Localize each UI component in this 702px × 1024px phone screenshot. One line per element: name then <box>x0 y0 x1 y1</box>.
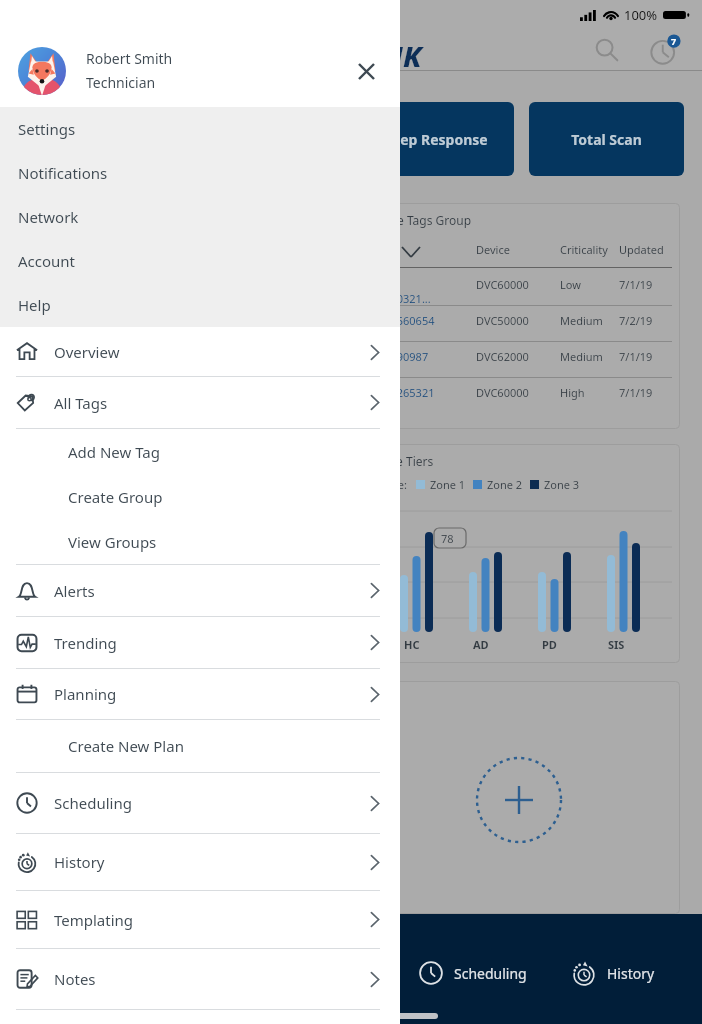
staticText: Criticality Response Tiers <box>293 453 434 469</box>
button[interactable]: Overview <box>0 328 400 376</box>
staticText: Zone 1 <box>430 477 466 492</box>
button[interactable]: Network <box>0 195 400 239</box>
button[interactable]: Trending <box>0 617 400 668</box>
staticText: TAG04560654 <box>364 313 435 328</box>
staticText: TAG01265321 <box>364 385 435 400</box>
button[interactable]: Scheduling <box>406 948 539 998</box>
staticText: Low <box>560 277 581 292</box>
button[interactable]: Scheduling <box>0 773 400 833</box>
staticText: Criticality <box>560 242 608 257</box>
button[interactable]: Planning <box>0 669 400 719</box>
button[interactable]: Settings <box>0 107 400 151</box>
button[interactable]: Notifications <box>0 151 400 195</box>
staticText: Zone: <box>378 477 407 492</box>
staticText: Total Scan <box>571 130 642 149</box>
button[interactable]: History <box>0 834 400 890</box>
staticText: Zone 3 <box>544 477 580 492</box>
staticText: Network <box>18 207 79 227</box>
staticText: Notifications <box>18 163 108 183</box>
button[interactable]: Total Scan <box>529 102 684 176</box>
staticText: High <box>560 385 585 400</box>
staticText: History <box>607 964 655 983</box>
staticText: Create Group <box>68 487 163 507</box>
staticText: Scheduling <box>454 964 527 983</box>
staticText: Updated <box>619 242 664 257</box>
staticText: Add New Tag <box>68 442 160 462</box>
staticText: Device <box>476 242 510 257</box>
staticText: TAG0390987 <box>364 349 429 364</box>
staticText: Planning <box>54 684 117 704</box>
staticText: 7/1/19 <box>619 349 653 364</box>
button[interactable]: Create Group <box>0 474 400 519</box>
staticText: 100% <box>624 6 658 24</box>
staticText: Robert Smith <box>86 49 173 68</box>
staticText: Medium <box>560 349 603 364</box>
button[interactable] <box>348 341 672 377</box>
staticText: 7/1/19 <box>619 277 653 292</box>
button[interactable]: Account <box>0 239 400 283</box>
staticText: MK <box>377 36 422 75</box>
staticText: Technician <box>86 73 156 92</box>
staticText: Create New Plan <box>68 736 184 756</box>
staticText: DVC60000 <box>476 277 529 292</box>
staticText: PD <box>542 637 557 652</box>
staticText: View Groups <box>68 532 157 552</box>
button[interactable]: Recent activity <box>646 31 684 69</box>
staticText: SIS <box>608 637 625 652</box>
button[interactable]: Alerts <box>0 565 400 616</box>
staticText: Templating <box>54 910 134 930</box>
staticText: 7/1/19 <box>619 385 653 400</box>
button[interactable]: Templating <box>0 891 400 948</box>
button[interactable]: Notes <box>0 949 400 1009</box>
button[interactable]: Close <box>346 51 386 91</box>
staticText: AD <box>473 637 489 652</box>
staticText: Zone 2 <box>487 477 523 492</box>
staticText: All Tags <box>54 393 108 413</box>
staticText: Overview <box>54 342 120 362</box>
staticText: DVC50000 <box>476 313 529 328</box>
button[interactable]: Create New Plan <box>0 720 400 772</box>
button[interactable] <box>348 305 672 341</box>
staticText: Sample Tags Group <box>362 212 472 228</box>
staticText: Medium <box>560 313 603 328</box>
button[interactable]: Add New Tag <box>0 429 400 474</box>
staticText: Alerts <box>54 581 95 601</box>
button[interactable] <box>348 377 672 413</box>
button[interactable]: History <box>559 948 667 998</box>
staticText: Scheduling <box>54 793 132 813</box>
staticText: 78 <box>441 531 454 546</box>
staticText: Notes <box>54 969 96 989</box>
button[interactable] <box>348 269 672 305</box>
staticText: DVC62000 <box>476 349 529 364</box>
staticText: History <box>54 852 105 872</box>
staticText: Settings <box>18 119 76 139</box>
button[interactable]: Step Response <box>359 102 514 176</box>
button[interactable]: Search <box>589 32 625 68</box>
staticText: DVC60000 <box>476 385 529 400</box>
button[interactable]: Help <box>0 283 400 327</box>
staticText: 7/2/19 <box>619 313 653 328</box>
staticText: TAG000321... <box>364 291 431 306</box>
staticText: HC <box>404 637 420 652</box>
staticText: 7 <box>671 35 677 47</box>
button[interactable]: Add <box>475 756 563 844</box>
staticText: Trending <box>54 633 117 653</box>
button[interactable]: View Groups <box>0 519 400 564</box>
staticText: Account <box>18 251 76 271</box>
staticText: Step Response <box>386 130 488 149</box>
staticText: Help <box>18 295 51 315</box>
button[interactable]: All Tags <box>0 377 400 428</box>
